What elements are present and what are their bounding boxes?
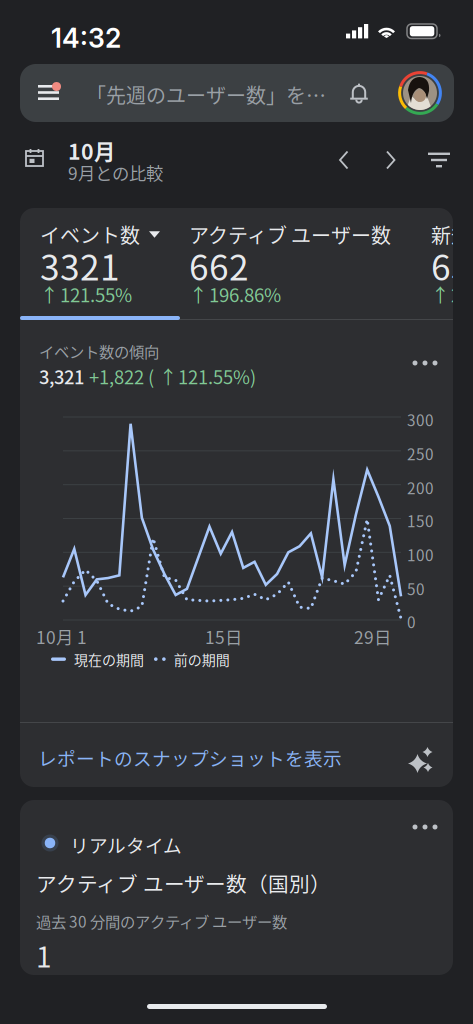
staticText: 196.86%: [209, 280, 281, 307]
staticText: 「先週のユーザー数」を…: [86, 80, 326, 109]
staticText: ↑: [159, 363, 177, 390]
staticText: 121.55%: [60, 280, 132, 307]
button[interactable]: More options: [412, 360, 437, 365]
staticText: 3,321: [39, 363, 84, 390]
staticText: 15日: [205, 624, 242, 649]
staticText: ↑: [431, 280, 450, 307]
staticText: 300: [407, 408, 434, 431]
staticText: アクティブ ユーザー数: [189, 220, 391, 249]
button[interactable]: Notifications: [349, 81, 369, 104]
staticText: 121.55%): [178, 363, 256, 390]
staticText: 65: [431, 239, 471, 291]
staticText: 250: [407, 442, 434, 465]
staticText: 1: [36, 935, 52, 975]
button[interactable]: Next period: [386, 150, 396, 169]
staticText: 29日: [354, 624, 391, 649]
staticText: ↑: [189, 280, 208, 307]
staticText: イベント数: [40, 220, 140, 249]
staticText: 現在の期間: [74, 649, 144, 669]
staticText: イベント数の傾向: [39, 340, 159, 362]
staticText: 50: [407, 577, 425, 600]
staticText: 2...: [451, 280, 473, 307]
staticText: 14:32: [51, 22, 121, 54]
button[interactable]: レポートのスナップショットを表示: [20, 723, 453, 792]
staticText: 9月との比較: [68, 160, 163, 185]
staticText: 10月 1: [36, 624, 87, 649]
button[interactable]: Previous period: [339, 150, 349, 169]
staticText: 前の期間: [174, 649, 230, 669]
button[interactable]: Account: [397, 70, 442, 115]
staticText: +1,822 (: [89, 363, 154, 390]
button[interactable]: Filter: [428, 152, 450, 167]
staticText: 200: [407, 476, 434, 499]
staticText: 0: [407, 610, 416, 633]
staticText: 3321: [40, 239, 120, 291]
button[interactable]: Menu: [38, 85, 61, 101]
staticText: 過去 30 分間のアクティブ ユーザー数: [36, 910, 287, 932]
staticText: リアルタイム: [70, 831, 182, 858]
button[interactable]: More options: [412, 824, 437, 829]
staticText: レポートのスナップショットを表示: [38, 744, 342, 771]
staticText: 662: [189, 239, 249, 291]
staticText: 150: [407, 509, 434, 532]
staticText: 100: [407, 543, 434, 566]
staticText: アクティブ ユーザー数（国別）: [36, 868, 331, 898]
staticText: ↑: [40, 280, 59, 307]
staticText: 新規ユーザー数: [431, 220, 473, 249]
staticText: 10月: [68, 135, 115, 166]
